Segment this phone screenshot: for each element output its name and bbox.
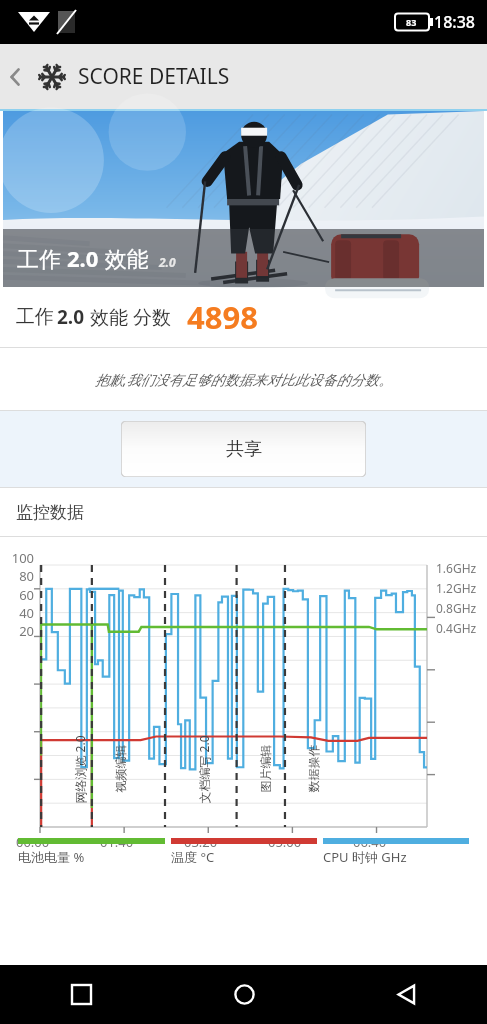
staticText: 83 xyxy=(406,16,417,28)
staticText: 2.0 xyxy=(67,243,99,273)
staticText: 文档编写 2.0 xyxy=(195,734,211,803)
staticText: 03:20 xyxy=(184,833,218,851)
staticText: 数据操作 xyxy=(305,744,320,792)
staticText: SCORE DETAILS xyxy=(78,62,230,91)
staticText: 01:40 xyxy=(100,833,134,851)
staticText: 视频编辑 xyxy=(112,744,127,792)
staticText: 共享 xyxy=(226,438,262,461)
button[interactable]: Recent apps xyxy=(0,965,163,1024)
staticText: 抱歉,我们没有足够的数据来对比此设备的分数。 xyxy=(95,370,393,389)
staticText: 效能 xyxy=(99,243,149,273)
staticText: 06:40 xyxy=(353,833,387,851)
staticText: 监控数据 xyxy=(16,502,84,523)
staticText: 2.0 xyxy=(159,254,176,270)
staticText: 00:00 xyxy=(16,833,50,851)
staticText: 1.6GHz xyxy=(436,560,477,576)
staticText: 40 xyxy=(4,604,34,622)
staticText: 工作 xyxy=(17,243,67,273)
staticText: 网络浏览 2.0 xyxy=(71,734,87,803)
button[interactable]: Back xyxy=(325,965,487,1024)
button[interactable]: Back xyxy=(0,44,74,109)
staticText: 18:38 xyxy=(434,11,475,33)
button[interactable]: 共享 xyxy=(121,421,366,477)
staticText: 05:00 xyxy=(268,833,302,851)
staticText: 80 xyxy=(4,567,34,585)
staticText: 0.8GHz xyxy=(436,600,477,616)
staticText: 电池电量 % xyxy=(18,848,85,866)
staticText: 图片编辑 xyxy=(257,744,272,792)
staticText: 0.4GHz xyxy=(436,620,477,636)
button[interactable]: Home xyxy=(163,965,325,1024)
staticText: 60 xyxy=(4,586,34,604)
staticText: 温度 °C xyxy=(171,848,215,866)
staticText: 1.2GHz xyxy=(436,580,477,596)
staticText: 工作 xyxy=(16,305,54,329)
staticText: CPU 时钟 GHz xyxy=(323,848,407,866)
staticText: 效能 分数 xyxy=(85,304,171,330)
staticText: 2.0 xyxy=(57,304,85,330)
staticText: 4898 xyxy=(187,296,258,338)
staticText: 20 xyxy=(4,622,34,640)
staticText: 100 xyxy=(4,549,34,567)
